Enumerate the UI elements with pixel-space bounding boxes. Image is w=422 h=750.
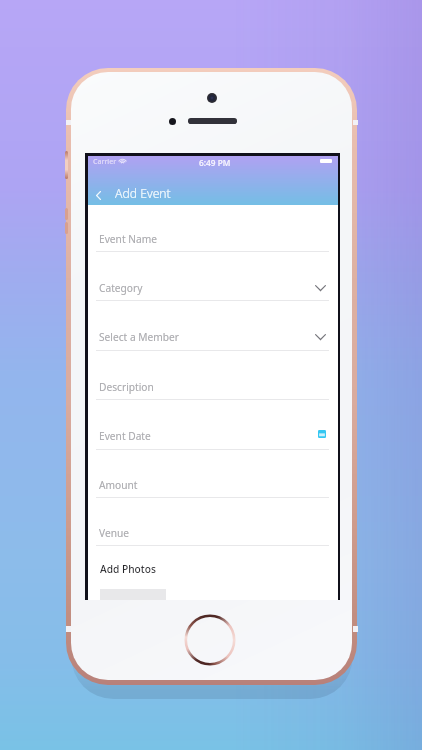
button[interactable]: Select a Member (88, 300, 338, 349)
staticText: Add Event (115, 185, 171, 202)
staticText: Event Date (99, 429, 151, 443)
staticText: Select a Member (99, 330, 180, 344)
staticText: Amount (99, 478, 138, 492)
button[interactable]: Home (182, 612, 238, 668)
button[interactable]: Amount (88, 449, 338, 497)
button[interactable]: Description (88, 350, 338, 399)
staticText: Description (99, 380, 154, 394)
button[interactable]: Back (89, 184, 107, 206)
staticText: Venue (99, 526, 129, 540)
staticText: Category (99, 281, 143, 295)
button[interactable]: Event Date (88, 399, 338, 448)
staticText: Carrier (93, 157, 117, 167)
staticText: Add Photos (100, 562, 156, 576)
staticText: 6:49 PM (199, 157, 231, 168)
button[interactable]: Venue (88, 497, 338, 545)
button[interactable]: Event Name (88, 205, 338, 251)
button[interactable]: Category (88, 251, 338, 300)
staticText: Event Name (99, 232, 157, 246)
